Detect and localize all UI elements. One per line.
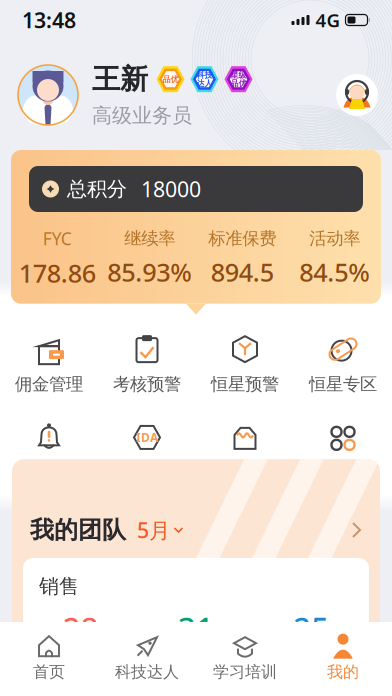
staticText: 5月 [137, 516, 170, 544]
button[interactable]: 佣金管理 [0, 328, 98, 403]
staticText: 总积分 [67, 177, 127, 201]
button[interactable]: 首页 [0, 626, 98, 692]
staticText: 18000 [141, 175, 201, 203]
button[interactable]: 总积分 [29, 166, 363, 212]
button[interactable]: 更多 [294, 417, 392, 492]
staticText: 更多 [326, 463, 360, 484]
button[interactable]: IDA [98, 416, 196, 493]
staticText: 31 [178, 608, 214, 648]
staticText: 13:48 [22, 6, 76, 34]
staticText: IDA [136, 429, 158, 445]
staticText: 4G [315, 8, 340, 32]
button[interactable]: 考核预警 [98, 328, 196, 403]
staticText: 178.86 [19, 256, 96, 290]
staticText: FYC [43, 227, 72, 250]
staticText: 达人 [196, 78, 212, 88]
staticText: 星级 [230, 70, 246, 80]
staticText: 佣金管理 [15, 374, 83, 395]
button[interactable]: 科技达人 [98, 626, 196, 692]
staticText: 自主经营 [211, 463, 279, 484]
staticText: 学习培训 [213, 662, 277, 682]
staticText: 继续率 [124, 228, 175, 249]
staticText: 活动率 [309, 228, 360, 249]
staticText: 恒星预警 [211, 374, 279, 395]
staticText: 恒星专区 [309, 374, 377, 395]
staticText: 品优 [162, 74, 178, 84]
staticText: 科技达人 [115, 662, 179, 682]
button[interactable]: 恒星预警 [196, 328, 294, 403]
button[interactable]: 学习培训 [196, 626, 294, 692]
button[interactable]: 品优预警 [0, 417, 98, 492]
staticText: 销售 [39, 574, 79, 599]
button[interactable]: 我的 [294, 626, 392, 692]
staticText: 标准保费 [208, 228, 276, 249]
staticText: 我的 [327, 662, 359, 682]
button[interactable]: 在线客服 [336, 74, 378, 116]
staticText: 25 [293, 608, 329, 648]
staticText: 85.93% [107, 255, 192, 289]
staticText: 王新 [92, 62, 148, 96]
staticText: 首页 [33, 662, 65, 682]
staticText: 894.5 [211, 255, 274, 289]
staticText: 我的团队 [30, 515, 126, 545]
button[interactable]: 恒星专区 [294, 328, 392, 403]
button[interactable]: 自主经营 [196, 417, 294, 492]
button[interactable]: 我的团队 [12, 502, 380, 558]
staticText: 科技 [196, 70, 212, 80]
staticText: 28 [63, 608, 99, 648]
staticText: 考核预警 [113, 374, 181, 395]
staticText: 84.5% [299, 255, 370, 289]
staticText: 品优 [230, 78, 246, 88]
staticText: 高级业务员 [92, 103, 192, 128]
